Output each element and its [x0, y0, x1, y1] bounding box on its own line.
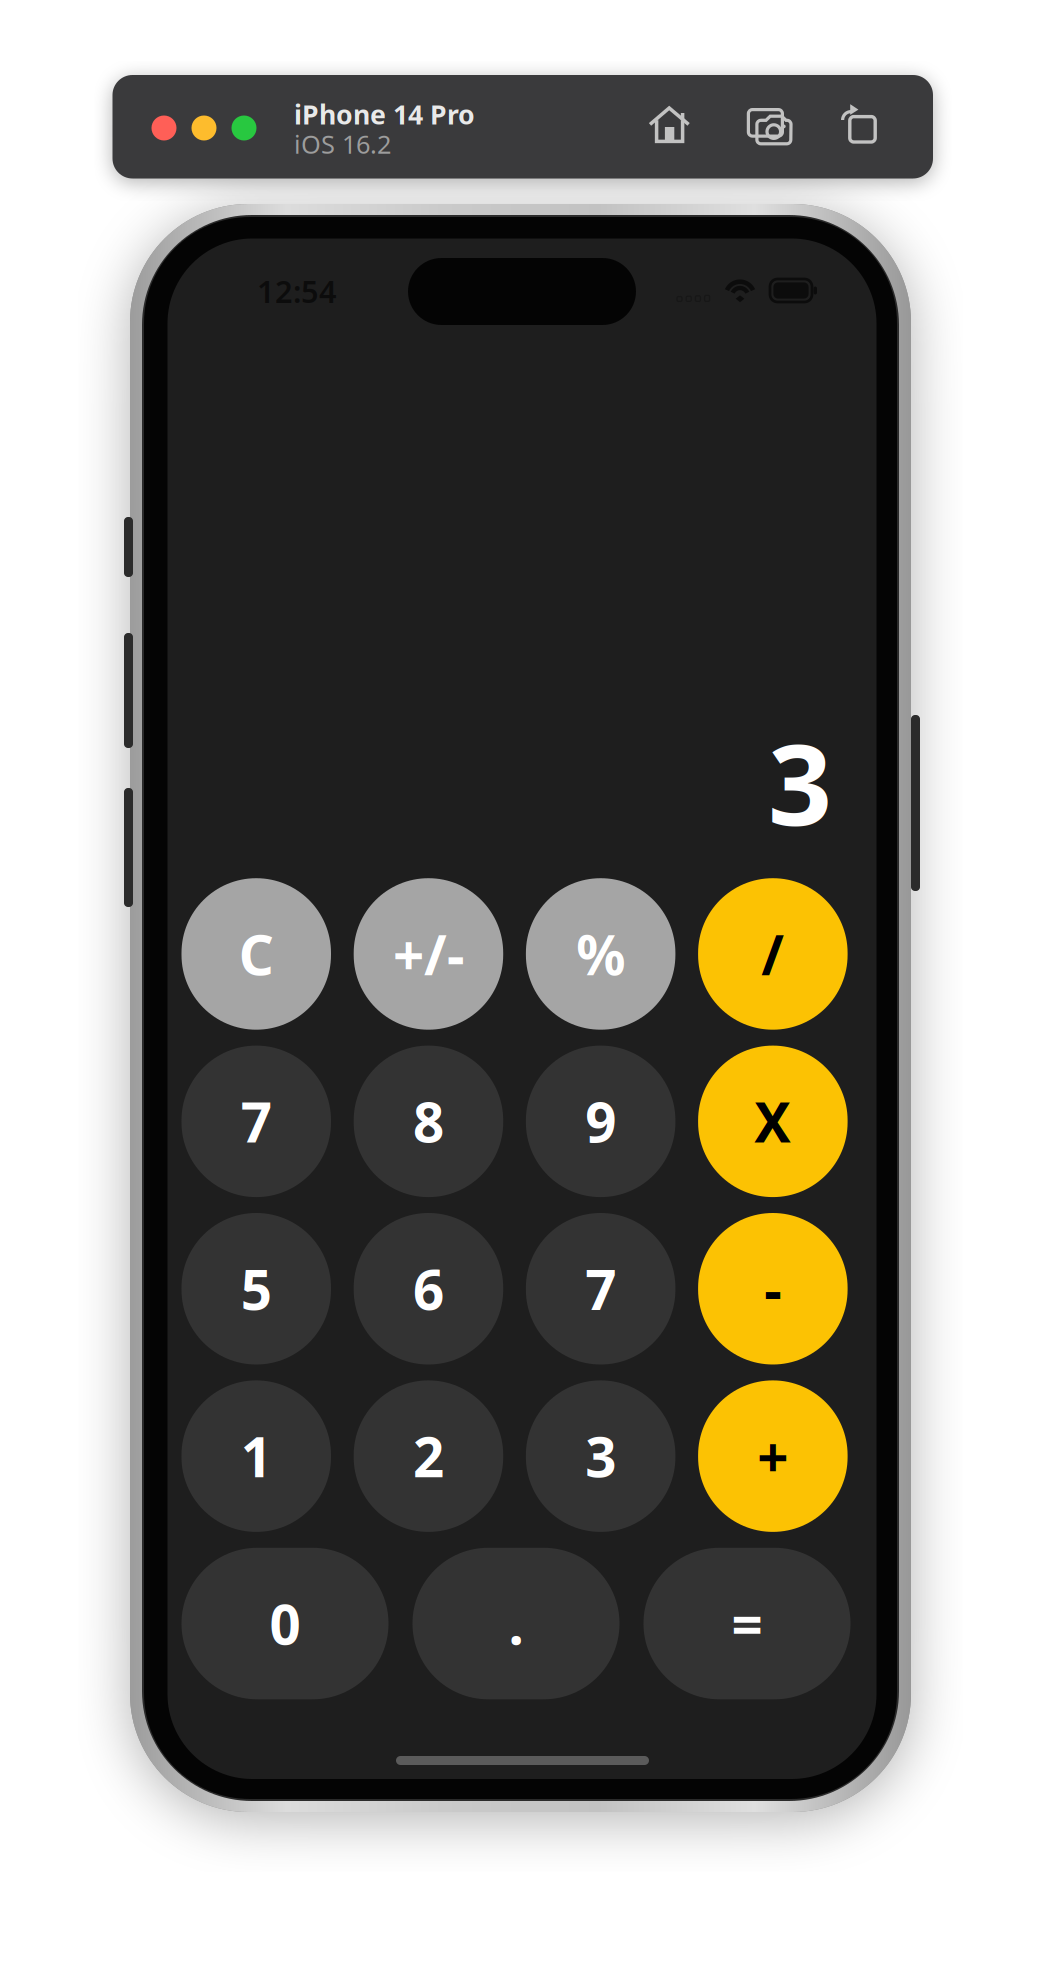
- staticText: 1: [241, 1420, 272, 1492]
- button[interactable]: 1: [181, 1380, 331, 1532]
- staticText: 5: [241, 1252, 272, 1325]
- button[interactable]: Screenshot: [0, 0, 1044, 1966]
- button[interactable]: 3: [526, 1380, 675, 1532]
- staticText: 0: [269, 1587, 300, 1660]
- staticText: +/-: [393, 918, 464, 990]
- staticText: 9: [585, 1085, 616, 1158]
- staticText: 3: [768, 708, 832, 856]
- button[interactable]: -: [698, 1213, 848, 1364]
- staticText: C: [239, 918, 274, 990]
- button[interactable]: 6: [354, 1213, 503, 1364]
- button[interactable]: 7: [526, 1213, 675, 1364]
- staticText: +: [757, 1420, 788, 1492]
- button[interactable]: Rotate device: [0, 0, 1044, 1966]
- staticText: .: [508, 1587, 523, 1660]
- staticText: 6: [413, 1252, 444, 1325]
- button[interactable]: =: [643, 1548, 850, 1699]
- staticText: =: [731, 1587, 762, 1660]
- staticText: 3: [585, 1420, 616, 1492]
- button[interactable]: 5: [181, 1213, 331, 1364]
- button[interactable]: 2: [354, 1380, 503, 1532]
- staticText: -: [764, 1252, 781, 1325]
- staticText: 12:54: [257, 271, 337, 311]
- button[interactable]: +/-: [354, 878, 503, 1030]
- staticText: 2: [413, 1420, 444, 1492]
- button[interactable]: X: [698, 1046, 848, 1197]
- staticText: 7: [241, 1085, 272, 1158]
- staticText: iOS 16.2: [294, 127, 391, 161]
- button[interactable]: %: [526, 878, 675, 1030]
- staticText: %: [576, 918, 625, 990]
- button[interactable]: Home: [0, 0, 1044, 1966]
- staticText: X: [754, 1085, 791, 1158]
- button[interactable]: 7: [181, 1046, 331, 1197]
- button[interactable]: C: [181, 878, 331, 1030]
- button[interactable]: +: [698, 1380, 848, 1532]
- button[interactable]: /: [698, 878, 848, 1030]
- staticText: 8: [413, 1085, 444, 1158]
- staticText: iPhone 14 Pro: [294, 96, 475, 132]
- staticText: /: [761, 918, 784, 990]
- button[interactable]: 8: [354, 1046, 503, 1197]
- button[interactable]: .: [412, 1548, 619, 1699]
- button[interactable]: 9: [526, 1046, 675, 1197]
- staticText: 7: [585, 1252, 616, 1325]
- button[interactable]: 0: [181, 1548, 388, 1699]
